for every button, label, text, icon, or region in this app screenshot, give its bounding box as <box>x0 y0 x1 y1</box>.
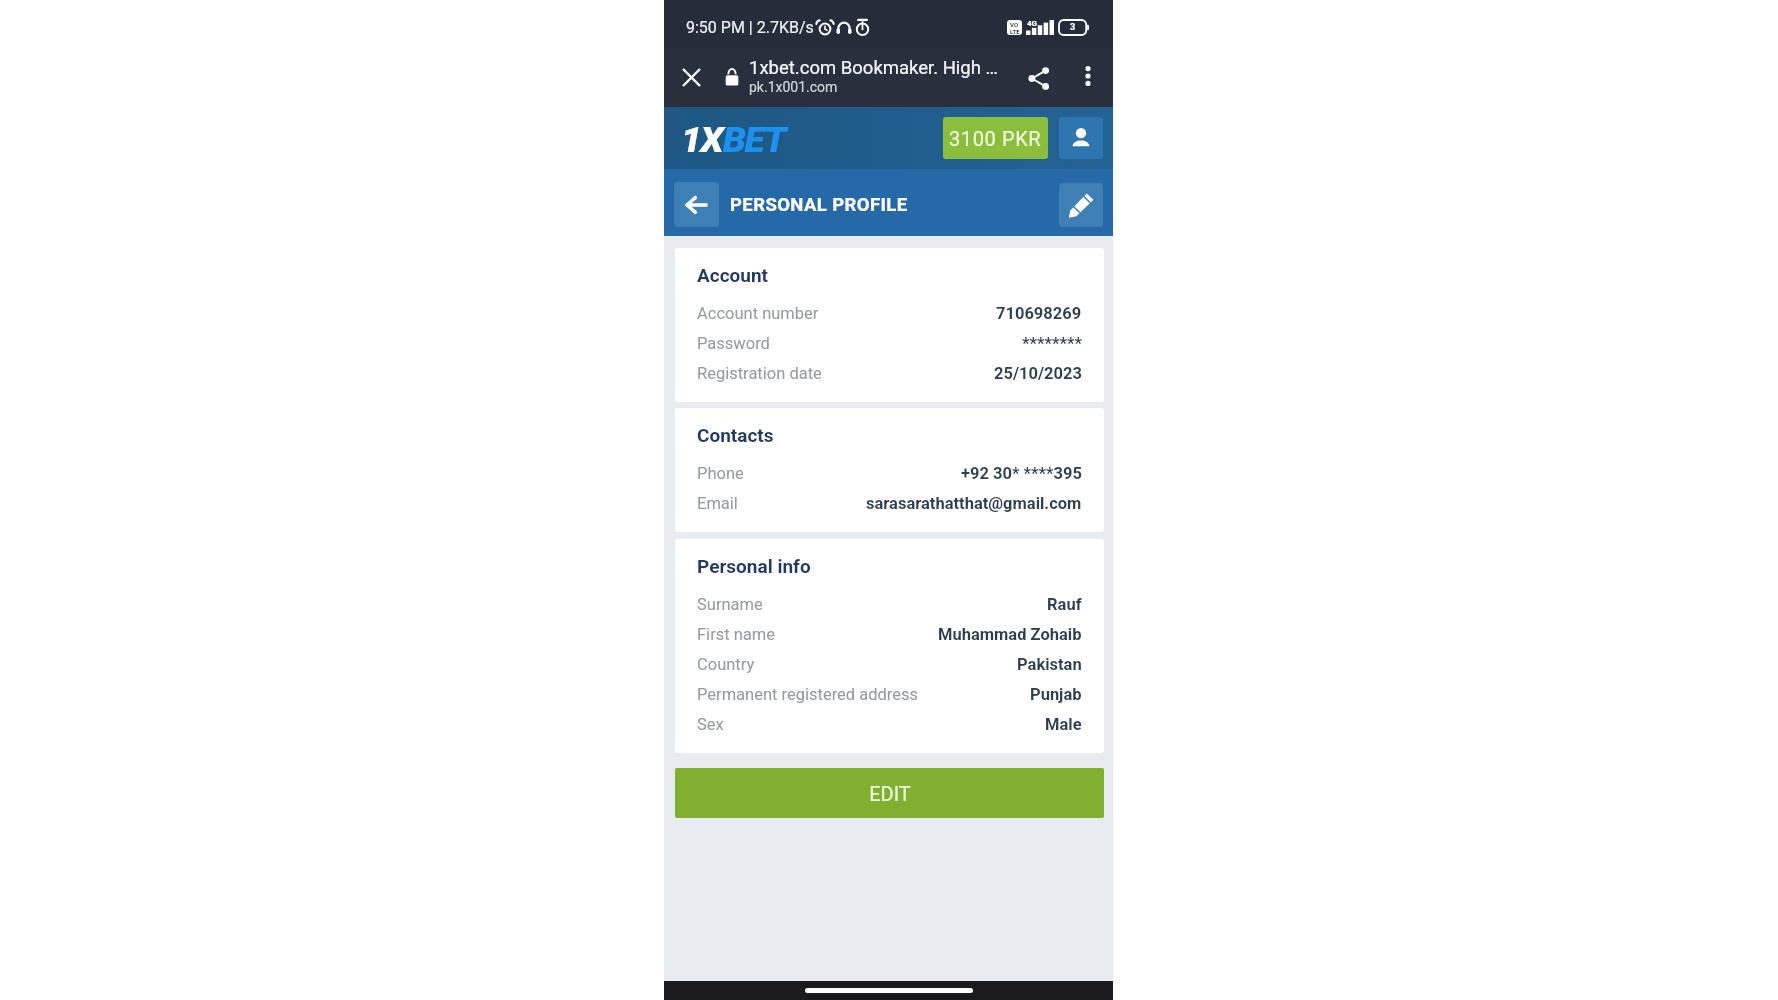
staticText: EDIT <box>869 782 911 805</box>
staticText: +92 30* ****395 <box>961 464 1082 483</box>
staticText: sarasarathatthat@gmail.com <box>866 494 1082 513</box>
staticText: 25/10/2023 <box>994 364 1082 383</box>
staticText: Country <box>697 655 755 674</box>
staticText: pk.1x001.com <box>749 79 838 95</box>
button[interactable]: 3100 PKR <box>943 117 1048 159</box>
button[interactable]: Edit profile <box>1059 183 1103 227</box>
staticText: Contacts <box>697 424 774 446</box>
staticText: Account number <box>697 304 819 323</box>
staticText: 3100 PKR <box>949 127 1042 150</box>
staticText: Personal info <box>697 555 811 577</box>
staticText: VO <box>1010 21 1019 28</box>
staticText: Surname <box>697 595 763 614</box>
staticText: LTE <box>1010 28 1020 35</box>
staticText: 4G <box>1027 19 1038 28</box>
staticText: Rauf <box>1047 595 1082 614</box>
button[interactable]: Back <box>674 182 719 227</box>
staticText: Muhammad Zohaib <box>938 625 1082 644</box>
staticText: BET <box>723 120 785 160</box>
staticText: Punjab <box>1030 685 1082 704</box>
staticText: 9:50 PM | 2.7KB/s <box>686 18 814 37</box>
staticText: ******** <box>1022 334 1082 353</box>
staticText: Male <box>1045 715 1082 734</box>
staticText: Account <box>697 264 769 286</box>
staticText: Registration date <box>697 364 822 383</box>
staticText: PERSONAL PROFILE <box>730 194 908 216</box>
staticText: 1X <box>681 120 723 160</box>
staticText: First name <box>697 625 776 644</box>
button[interactable]: Close <box>675 61 708 94</box>
staticText: Permanent registered address <box>697 685 919 704</box>
button[interactable]: More options <box>1074 64 1102 92</box>
button[interactable]: Share <box>1022 61 1056 95</box>
staticText: Phone <box>697 464 744 483</box>
staticText: Pakistan <box>1017 655 1082 674</box>
staticText: Email <box>697 494 738 513</box>
staticText: 3 <box>1070 22 1076 33</box>
staticText: Password <box>697 334 770 353</box>
staticText: 1xbet.com Bookmaker. High … <box>749 57 998 79</box>
button[interactable]: Account <box>1059 117 1103 159</box>
staticText: 710698269 <box>996 304 1082 323</box>
button[interactable]: EDIT <box>675 768 1104 818</box>
staticText: Sex <box>697 715 724 734</box>
